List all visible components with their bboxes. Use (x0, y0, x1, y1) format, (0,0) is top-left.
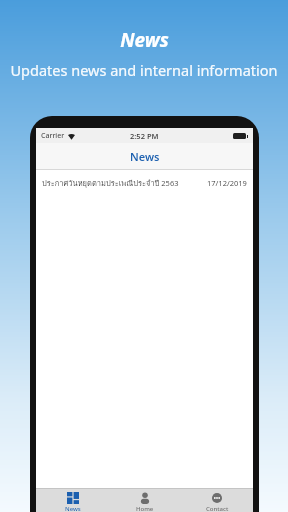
staticText: News (120, 27, 169, 53)
staticText: 17/12/2019 (207, 178, 247, 188)
staticText: Updates news and internal information (10, 60, 278, 80)
button[interactable]: ประกาศวันหยุดตามประเพณีประจำปี 2563 (36, 170, 253, 196)
staticText: News (130, 149, 160, 164)
staticText: News (65, 505, 81, 512)
staticText: 2:52 PM (130, 131, 159, 141)
staticText: Contact (206, 505, 229, 512)
button[interactable]: Home (109, 489, 181, 512)
staticText: ประกาศวันหยุดตามประเพณีประจำปี 2563 (42, 177, 203, 189)
button[interactable]: Contact (181, 489, 253, 512)
button[interactable]: News (36, 489, 109, 512)
staticText: Home (136, 505, 154, 512)
staticText: Carrier (41, 131, 65, 141)
